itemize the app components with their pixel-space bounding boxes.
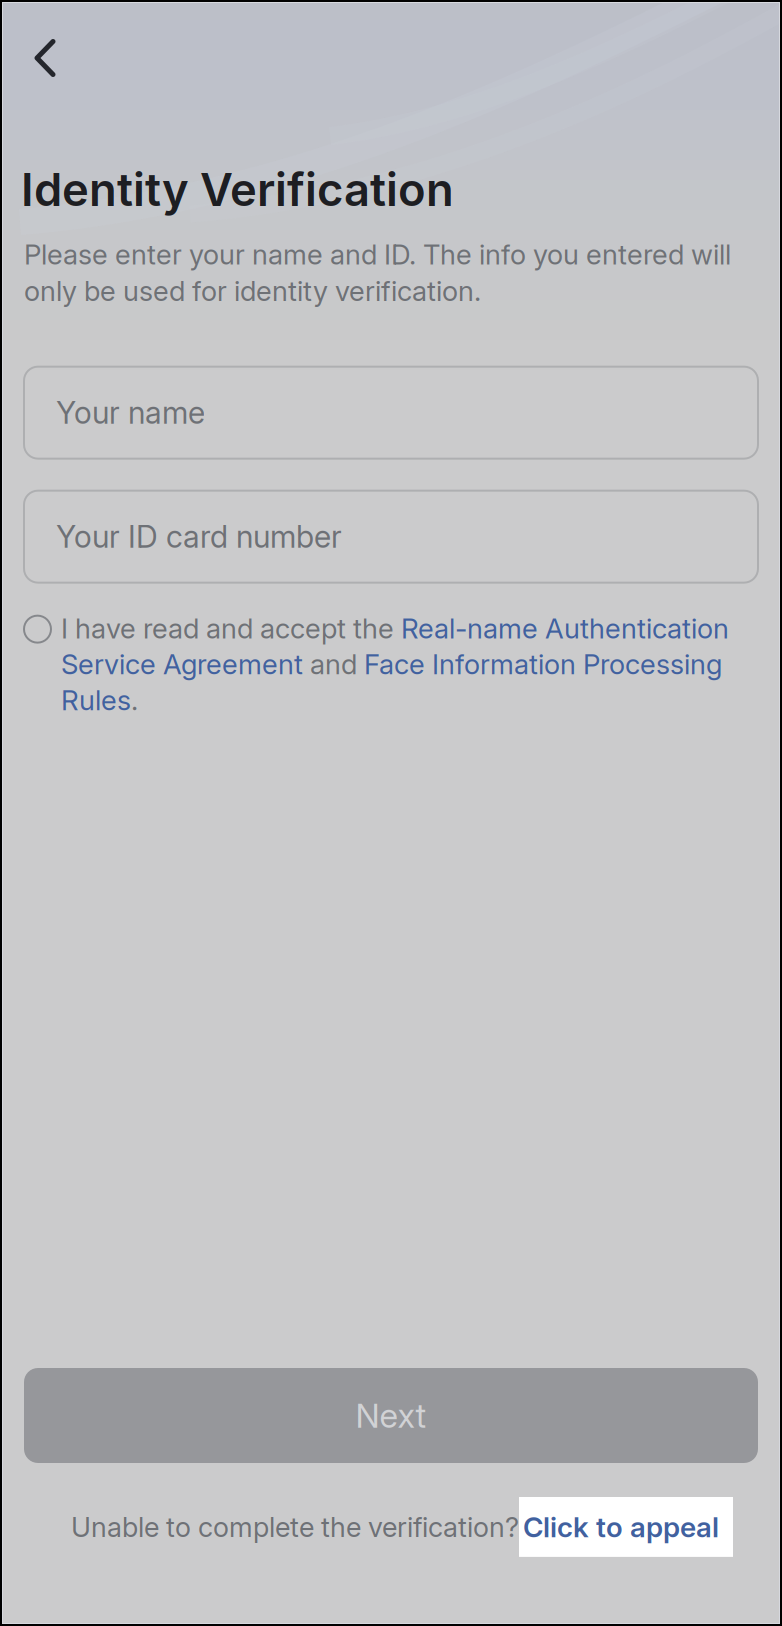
staticText: Your ID card number — [56, 518, 342, 555]
staticText: I have read and accept the Real-name Aut… — [61, 612, 729, 717]
staticText: Identity Verification — [21, 162, 454, 217]
staticText: Your name — [56, 394, 205, 431]
button[interactable]: Next — [24, 1368, 758, 1463]
button[interactable]: Your name — [24, 367, 758, 459]
staticText: Please enter your name and ID. The info … — [24, 238, 731, 308]
staticText: Click to appeal — [523, 1510, 719, 1544]
staticText: Unable to complete the verification? — [71, 1510, 519, 1543]
button[interactable]: Click to appeal — [519, 1497, 733, 1557]
button[interactable]: Back — [6, 16, 84, 100]
button[interactable]: Your ID card number — [24, 491, 758, 583]
button[interactable]: Agree to the service agreement — [24, 612, 51, 643]
staticText: Next — [355, 1395, 426, 1436]
